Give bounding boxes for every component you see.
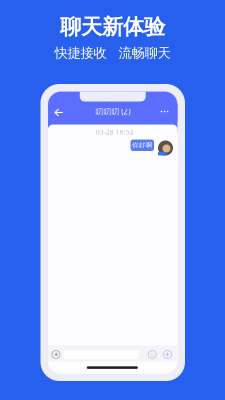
staticText: 快捷接收 流畅聊天 xyxy=(54,45,170,61)
staticText: 03-28 16:52 xyxy=(96,128,134,136)
staticText: 聊天新体验 xyxy=(60,14,165,40)
button[interactable]: More xyxy=(158,106,170,116)
button[interactable]: Voice message xyxy=(52,350,60,358)
staticText: 你好啊 xyxy=(132,141,153,149)
button[interactable]: Back xyxy=(52,105,64,117)
staticText: 叨叨叨 (2) xyxy=(95,106,130,117)
button[interactable]: Emoji xyxy=(148,350,156,358)
button[interactable]: More options xyxy=(163,350,171,358)
